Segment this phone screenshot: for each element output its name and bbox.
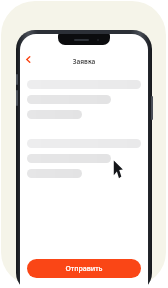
staticText: Отправить [65,264,103,274]
button[interactable]: Отправить [27,259,141,278]
staticText: Заявка [20,57,148,66]
button[interactable]: Назад [23,54,34,65]
